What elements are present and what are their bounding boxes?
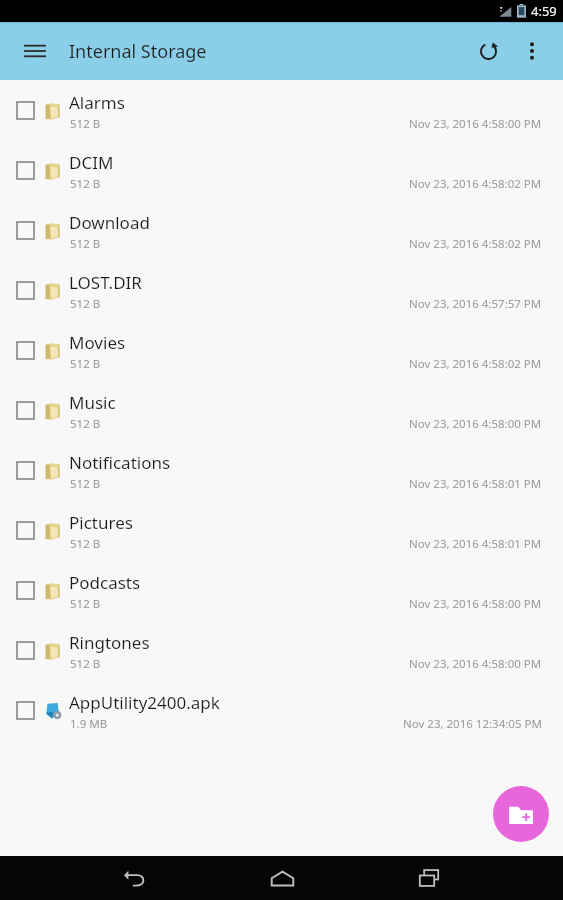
button[interactable]: Select Music xyxy=(0,380,563,440)
staticText: Notifications xyxy=(69,451,171,474)
button[interactable]: Home xyxy=(255,858,309,898)
staticText: Nov 23, 2016 4:58:00 PM xyxy=(409,596,542,612)
staticText: 512 B xyxy=(70,116,101,132)
staticText: Pictures xyxy=(69,511,133,534)
button[interactable]: Back xyxy=(108,858,162,898)
staticText: 4:59 xyxy=(531,2,557,20)
staticText: Music xyxy=(69,391,116,414)
staticText: Nov 23, 2016 4:58:00 PM xyxy=(409,416,542,432)
staticText: Podcasts xyxy=(69,571,141,594)
staticText: Download xyxy=(69,211,150,234)
button[interactable]: Select Movies xyxy=(9,334,41,366)
staticText: 512 B xyxy=(70,536,101,552)
button[interactable]: Select Alarms xyxy=(9,94,41,126)
button[interactable]: Select LOST.DIR xyxy=(9,274,41,306)
staticText: Internal Storage xyxy=(69,39,207,64)
button[interactable]: Select AppUtility2400.apk xyxy=(9,694,41,726)
staticText: Nov 23, 2016 4:58:01 PM xyxy=(409,476,542,492)
button[interactable]: Select Pictures xyxy=(9,514,41,546)
staticText: 512 B xyxy=(70,176,101,192)
staticText: Movies xyxy=(69,331,126,354)
staticText: AppUtility2400.apk xyxy=(69,691,220,714)
staticText: 512 B xyxy=(70,416,101,432)
button[interactable]: Select Pictures xyxy=(0,500,563,560)
staticText: 1.9 MB xyxy=(70,716,108,732)
staticText: Nov 23, 2016 4:58:02 PM xyxy=(409,236,542,252)
button[interactable]: Select Music xyxy=(9,394,41,426)
staticText: 512 B xyxy=(70,296,101,312)
staticText: Nov 23, 2016 4:58:00 PM xyxy=(409,116,542,132)
staticText: Nov 23, 2016 4:58:00 PM xyxy=(409,656,542,672)
button[interactable]: More options xyxy=(511,30,553,72)
staticText: DCIM xyxy=(69,151,114,174)
staticText: 512 B xyxy=(70,236,101,252)
button[interactable]: Refresh xyxy=(465,28,511,74)
staticText: Nov 23, 2016 4:57:57 PM xyxy=(409,296,542,312)
button[interactable]: Select Download xyxy=(0,200,563,260)
staticText: 512 B xyxy=(70,596,101,612)
button[interactable]: Select Notifications xyxy=(0,440,563,500)
staticText: Nov 23, 2016 4:58:01 PM xyxy=(409,536,542,552)
button[interactable]: Select DCIM xyxy=(9,154,41,186)
button[interactable]: Select Alarms xyxy=(0,80,563,140)
button[interactable]: Select DCIM xyxy=(0,140,563,200)
button[interactable]: Select Ringtones xyxy=(9,634,41,666)
button[interactable]: Recent apps xyxy=(402,858,456,898)
button[interactable]: Select AppUtility2400.apk xyxy=(0,680,563,740)
button[interactable]: New folder xyxy=(493,786,549,842)
button[interactable]: Select Notifications xyxy=(9,454,41,486)
staticText: Alarms xyxy=(69,91,125,114)
staticText: Nov 23, 2016 12:34:05 PM xyxy=(403,716,542,732)
button[interactable]: Select Movies xyxy=(0,320,563,380)
staticText: Nov 23, 2016 4:58:02 PM xyxy=(409,176,542,192)
staticText: 512 B xyxy=(70,656,101,672)
staticText: Nov 23, 2016 4:58:02 PM xyxy=(409,356,542,372)
staticText: Ringtones xyxy=(69,631,150,654)
button[interactable]: Select Download xyxy=(9,214,41,246)
staticText: 512 B xyxy=(70,476,101,492)
button[interactable]: Select Podcasts xyxy=(9,574,41,606)
staticText: 512 B xyxy=(70,356,101,372)
button[interactable]: Select LOST.DIR xyxy=(0,260,563,320)
button[interactable]: Open navigation drawer xyxy=(14,30,56,72)
button[interactable]: Select Podcasts xyxy=(0,560,563,620)
staticText: LOST.DIR xyxy=(69,271,142,294)
button[interactable]: Select Ringtones xyxy=(0,620,563,680)
